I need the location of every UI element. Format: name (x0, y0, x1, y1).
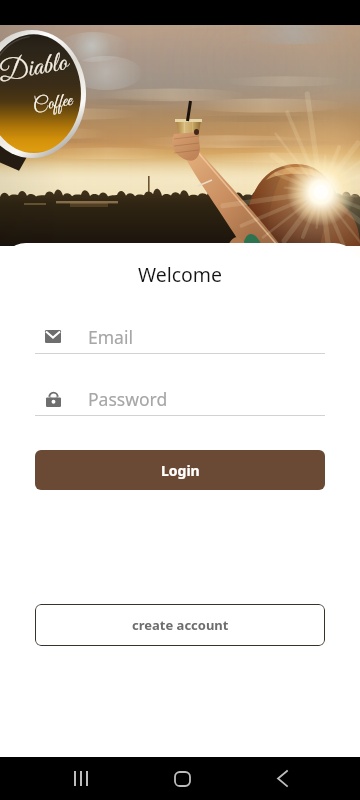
staticText: Diablo (0, 45, 70, 92)
staticText: Email (88, 325, 133, 349)
staticText: create account (132, 616, 229, 634)
button[interactable]: create account (35, 604, 325, 646)
button[interactable]: Back (242, 757, 322, 800)
button[interactable]: Login (35, 450, 325, 490)
button[interactable]: Password (35, 378, 325, 416)
staticText: Welcome (0, 261, 360, 288)
staticText: Login (161, 461, 200, 480)
button[interactable]: Email (35, 316, 325, 354)
staticText: Coffee (31, 89, 75, 119)
staticText: Password (88, 387, 168, 411)
button[interactable]: Recent apps (41, 757, 121, 800)
button[interactable]: Home (142, 757, 222, 800)
